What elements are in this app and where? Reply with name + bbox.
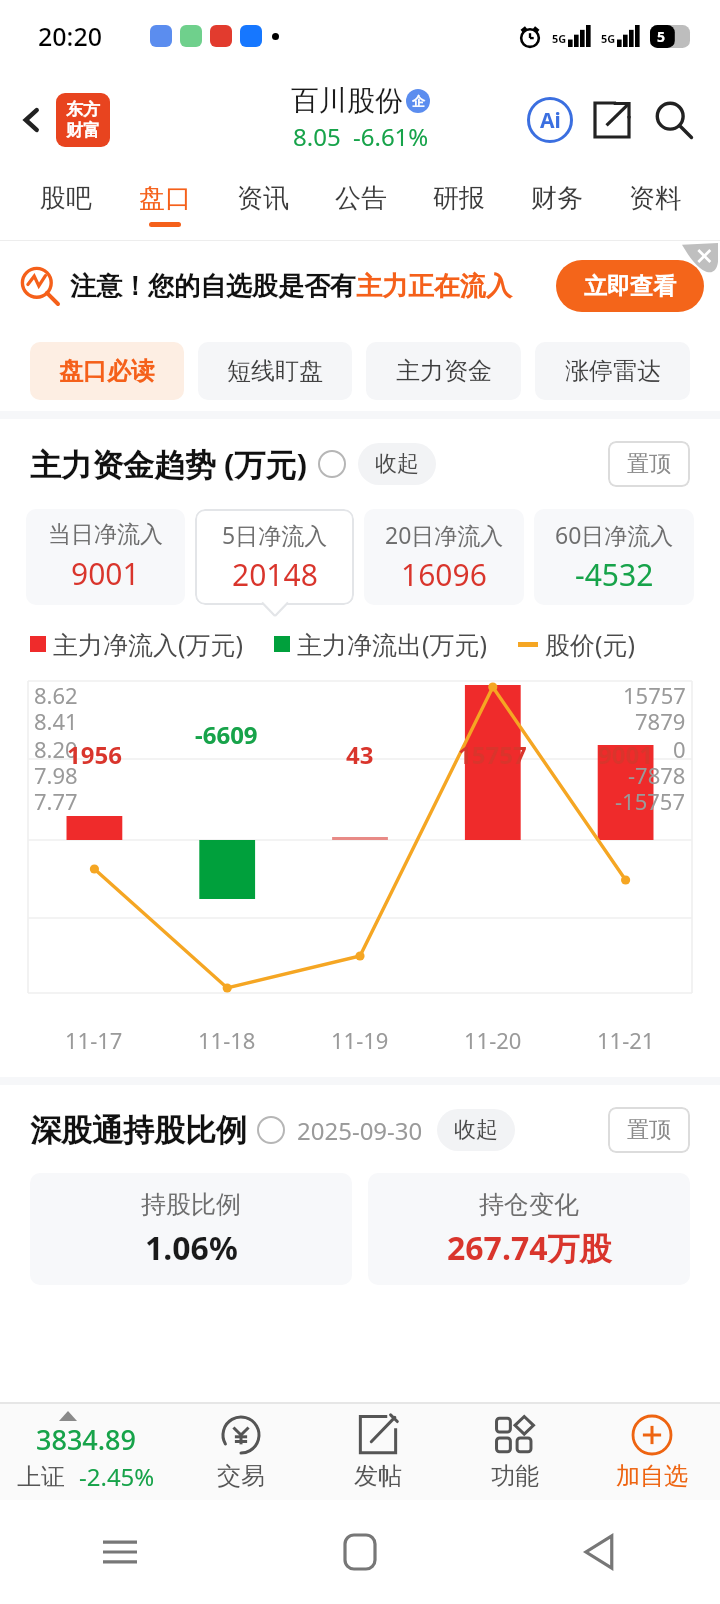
staticText: 8.62 [34,680,78,710]
staticText: 11-19 [331,1025,389,1055]
button[interactable]: 主力资金 [366,342,521,400]
button[interactable]: Recents [0,1500,240,1604]
button[interactable]: 功能 [446,1404,583,1500]
staticText: 置顶 [627,1116,671,1144]
staticText: 9001 [71,553,140,594]
button[interactable]: 资讯 [214,168,312,240]
staticText: 资讯 [237,182,289,215]
staticText: Ai [540,106,561,135]
staticText: 15757 [623,680,686,710]
staticText: 立即查看 [584,272,676,301]
staticText: 5G [601,31,616,46]
staticText: 主力正在流入 [356,270,512,303]
staticText: 当日净流入 [48,520,163,549]
staticText: 持仓变化 [479,1189,579,1220]
button[interactable]: 3834.89 [0,1404,172,1500]
staticText: 资料 [629,182,681,215]
staticText: 11-21 [597,1025,655,1055]
staticText: 置顶 [627,450,671,478]
staticText: 股价(元) [545,627,636,661]
button[interactable]: 公告 [312,168,410,240]
staticText: -2.45% [79,1460,155,1493]
staticText: -15757 [615,786,686,816]
staticText: 20日净流入 [385,519,504,550]
staticText: 1.06% [145,1226,238,1270]
button[interactable]: 20日净流入 [364,509,524,605]
staticText: 20148 [232,554,318,595]
button[interactable]: Share [584,92,640,148]
staticText: 收起 [375,450,419,478]
staticText: 8.20 [34,734,78,764]
staticText: 8.05 [293,120,341,153]
button[interactable]: 涨停雷达 [535,342,690,400]
staticText: 11-20 [464,1025,522,1055]
staticText: 2025-09-30 [297,1114,423,1147]
button[interactable]: 财务 [508,168,606,240]
button[interactable]: 加自选 [583,1404,720,1500]
staticText: 主力资金 [396,356,492,386]
staticText: 注意！您的自选股是否有 [70,270,356,303]
staticText: 主力净流入(万元) [53,627,244,661]
staticText: 股吧 [40,182,92,215]
staticText: 7.98 [34,760,78,790]
button[interactable]: 发帖 [309,1404,446,1500]
staticText: 盘口必读 [59,356,155,386]
button[interactable]: 盘口必读 [30,342,184,400]
staticText: 短线盯盘 [227,356,323,386]
staticText: 收起 [454,1116,498,1144]
staticText: 功能 [491,1461,539,1491]
staticText: 8.41 [34,706,78,736]
staticText: 3834.89 [36,1421,137,1458]
button[interactable]: 研报 [410,168,508,240]
button[interactable]: 资料 [606,168,704,240]
button[interactable]: Back [480,1500,720,1604]
staticText: 研报 [433,182,485,215]
button[interactable]: Back [6,94,58,146]
staticText: 财富 [66,120,100,141]
staticText: 交易 [217,1461,265,1491]
staticText: 上证 [17,1462,65,1492]
staticText: 15757 [458,738,527,771]
staticText: 9001 [598,738,653,771]
button[interactable]: 东方 [56,93,110,147]
staticText: 16096 [401,554,487,595]
button[interactable]: 持仓变化 [368,1173,690,1285]
staticText: 企 [412,93,425,109]
button[interactable]: 置顶 [608,441,690,487]
button[interactable]: 5日净流入 [195,509,354,605]
button[interactable]: 立即查看 [556,260,704,312]
staticText: 5日净流入 [222,519,328,550]
staticText: 发帖 [354,1461,402,1491]
staticText: 涨停雷达 [565,356,661,386]
button[interactable]: 持股比例 [30,1173,352,1285]
staticText: 5G [552,31,567,46]
staticText: 主力资金趋势 (万元) [30,443,308,485]
staticText: 11-17 [65,1025,123,1055]
staticText: 加自选 [616,1461,688,1491]
staticText: 60日净流入 [555,519,674,550]
staticText: 公告 [335,182,387,215]
button[interactable]: Search [646,92,702,148]
button[interactable]: 置顶 [608,1107,690,1153]
staticText: 43 [346,738,374,771]
staticText: -6609 [195,718,258,751]
button[interactable]: Close [680,241,720,281]
staticText: 财务 [531,182,583,215]
staticText: -6.61% [353,120,429,153]
button[interactable]: 交易 [172,1404,309,1500]
staticText: 1956 [67,738,122,771]
button[interactable]: 股吧 [16,168,115,240]
staticText: 267.74万股 [447,1226,612,1270]
button[interactable]: 收起 [358,443,436,485]
button[interactable]: 当日净流入 [26,509,185,605]
staticText: 持股比例 [141,1189,241,1220]
button[interactable]: 盘口 [115,168,214,240]
staticText: -4532 [575,554,654,595]
staticText: 20:20 [38,19,103,53]
button[interactable]: AI assistant [522,92,578,148]
button[interactable]: 收起 [437,1109,515,1151]
button[interactable]: 短线盯盘 [198,342,352,400]
button[interactable]: 60日净流入 [534,509,694,605]
staticText: 盘口 [139,182,191,215]
button[interactable]: Home [240,1500,480,1604]
